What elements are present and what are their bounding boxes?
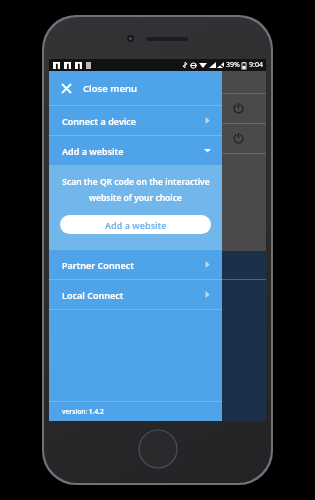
- button[interactable]: Add a website: [60, 215, 211, 234]
- staticText: 9:04: [249, 60, 263, 70]
- staticText: Connect a device: [62, 115, 137, 127]
- button[interactable]: Power: [49, 94, 266, 123]
- button[interactable]: Power: [49, 124, 266, 153]
- button[interactable]: Add a website: [49, 136, 222, 165]
- staticText: 39%: [226, 60, 240, 70]
- staticText: Add a website: [62, 145, 124, 157]
- staticText: version: 1.4.2: [62, 407, 104, 416]
- staticText: Partner Connect: [62, 259, 134, 271]
- staticText: website of your choice: [89, 192, 182, 204]
- button[interactable]: Close menu: [49, 71, 222, 105]
- staticText: Local Connect: [62, 289, 124, 301]
- staticText: Add a website: [105, 219, 167, 231]
- staticText: Close menu: [83, 82, 138, 95]
- staticText: Scan the QR code on the interactive: [62, 176, 210, 188]
- button[interactable]: Connect a device: [49, 106, 222, 135]
- button[interactable]: Local Connect: [49, 280, 222, 309]
- button[interactable]: Partner Connect: [49, 250, 222, 279]
